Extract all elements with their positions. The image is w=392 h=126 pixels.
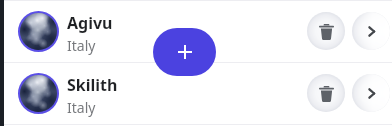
button[interactable]: Add — [153, 28, 216, 76]
button[interactable]: Agivu — [0, 0, 392, 62]
button[interactable]: Delete — [307, 74, 345, 112]
staticText: Skilith — [67, 74, 118, 96]
button[interactable]: Open details — [352, 74, 390, 112]
button[interactable]: Open details — [352, 12, 390, 50]
button[interactable]: Skilith — [0, 62, 392, 124]
staticText: Agivu — [67, 12, 113, 34]
staticText: Italy — [67, 98, 96, 117]
staticText: Italy — [67, 36, 96, 55]
button[interactable]: Delete — [307, 12, 345, 50]
